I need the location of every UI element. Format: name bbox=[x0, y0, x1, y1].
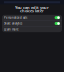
staticText: You can edit your bbox=[15, 5, 49, 10]
staticText: choices later bbox=[20, 8, 44, 13]
button[interactable]: Share analytics bbox=[2, 21, 62, 26]
staticText: Learn more bbox=[4, 28, 19, 31]
staticText: Share analytics bbox=[4, 22, 22, 25]
button[interactable]: Learn more bbox=[2, 27, 62, 32]
button[interactable]: Personalized ads bbox=[2, 15, 62, 20]
staticText: Personalized ads bbox=[4, 16, 27, 19]
